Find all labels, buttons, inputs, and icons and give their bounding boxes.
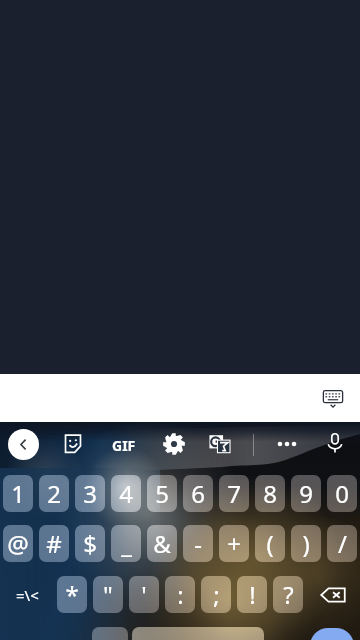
button[interactable]: @ [3,525,33,562]
staticText: 1 2 [99,635,121,640]
staticText: & [153,527,171,560]
staticText: GIF [112,436,136,455]
button[interactable]: 7 [219,475,249,512]
staticText: 9 [299,477,313,510]
button[interactable]: Stickers [62,433,84,455]
staticText: 2 [47,477,61,510]
button[interactable]: ) [291,525,321,562]
button[interactable]: ? [273,576,303,613]
button[interactable]: ( [255,525,285,562]
staticText: ! [249,578,256,611]
staticText: " [103,578,113,611]
staticText: ) [302,527,310,560]
button[interactable]: 8 [255,475,285,512]
staticText: / [338,527,347,560]
staticText: ; [213,578,220,611]
button[interactable]: 0 [327,475,357,512]
staticText: 3 [83,477,97,510]
button[interactable]: ' [129,576,159,613]
button[interactable]: Enter [310,628,354,640]
button[interactable]: 9 [291,475,321,512]
button[interactable]: 5 [147,475,177,512]
staticText: 4 [119,477,133,510]
staticText: 8 [263,477,277,510]
staticText: - [194,527,202,560]
button[interactable]: Translate [209,433,231,455]
button[interactable]: 1 [3,475,33,512]
staticText: + [227,527,241,560]
staticText: $ [83,527,97,560]
button[interactable]: =\< [3,576,51,613]
button[interactable]: + [219,525,249,562]
staticText: # [46,527,62,560]
button[interactable]: Back [8,429,39,460]
button[interactable]: " [93,576,123,613]
button[interactable]: * [57,576,87,613]
button[interactable]: & [147,525,177,562]
button[interactable]: 6 [183,475,213,512]
button[interactable]: Settings [163,433,185,455]
staticText: 5 [155,477,169,510]
staticText: 6 [191,477,205,510]
button[interactable]: 4 [111,475,141,512]
button[interactable]: / [327,525,357,562]
staticText: ? [283,578,294,611]
button[interactable]: # [39,525,69,562]
button[interactable]: Voice input [324,432,346,454]
button[interactable]: - [183,525,213,562]
staticText: 1 [11,477,25,510]
button[interactable]: 2 [39,475,69,512]
button[interactable]: Backspace [309,576,357,613]
staticText: ( [266,527,274,560]
button[interactable]: _ [111,525,141,562]
staticText: =\< [16,585,39,605]
staticText: * [65,578,79,611]
button[interactable]: Hide keyboard [316,381,350,415]
button[interactable]: ! [237,576,267,613]
staticText: _ [121,527,132,560]
staticText: 0 [335,477,349,510]
staticText: : [177,578,184,611]
button[interactable]: 1 2 [92,627,128,640]
staticText: ' [141,578,147,611]
staticText: 7 [227,477,241,510]
button[interactable]: : [165,576,195,613]
button[interactable]: $ [75,525,105,562]
staticText: @ [7,527,29,560]
button[interactable]: More options [276,433,298,455]
button[interactable]: GIF [110,435,138,455]
button[interactable]: ; [201,576,231,613]
button[interactable]: 3 [75,475,105,512]
button[interactable]: Space [132,627,264,640]
